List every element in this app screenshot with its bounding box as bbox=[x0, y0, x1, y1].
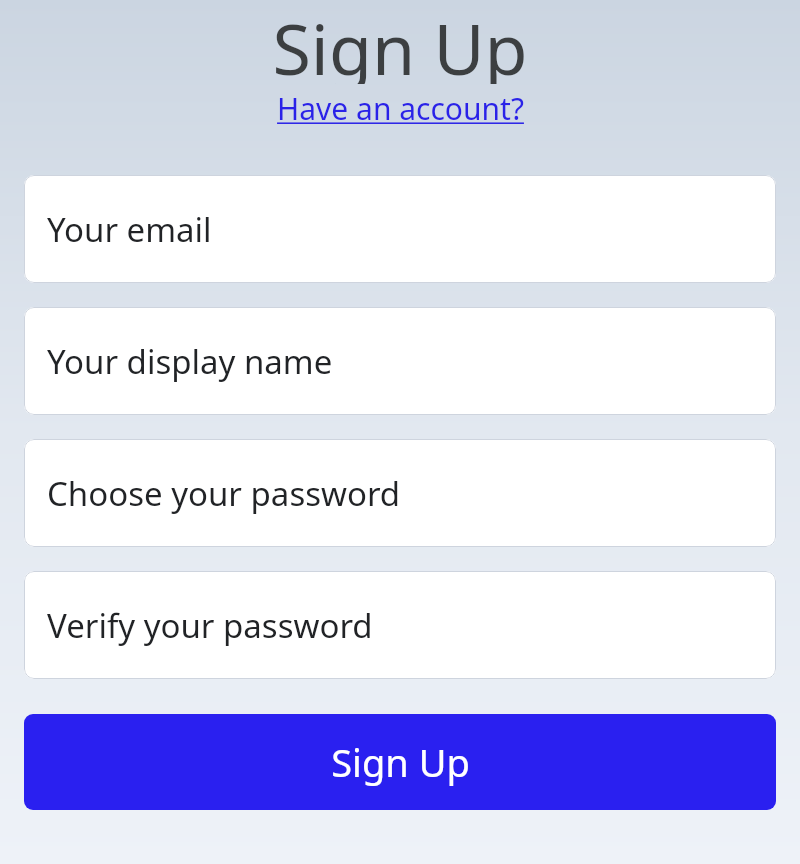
button[interactable]: Your display name bbox=[24, 307, 776, 415]
button[interactable]: Choose your password bbox=[24, 439, 776, 547]
staticText: Choose your password bbox=[47, 471, 401, 516]
staticText: Your display name bbox=[47, 339, 333, 384]
button[interactable]: Verify your password bbox=[24, 571, 776, 679]
button[interactable]: Have an account? bbox=[271, 84, 530, 133]
staticText: Sign Up bbox=[272, 0, 528, 84]
button[interactable]: Sign Up bbox=[24, 714, 776, 810]
staticText: Verify your password bbox=[47, 603, 373, 648]
staticText: Your email bbox=[47, 207, 212, 252]
staticText: Have an account? bbox=[277, 88, 524, 129]
button[interactable]: Your email bbox=[24, 175, 776, 283]
staticText: Sign Up bbox=[331, 736, 470, 788]
